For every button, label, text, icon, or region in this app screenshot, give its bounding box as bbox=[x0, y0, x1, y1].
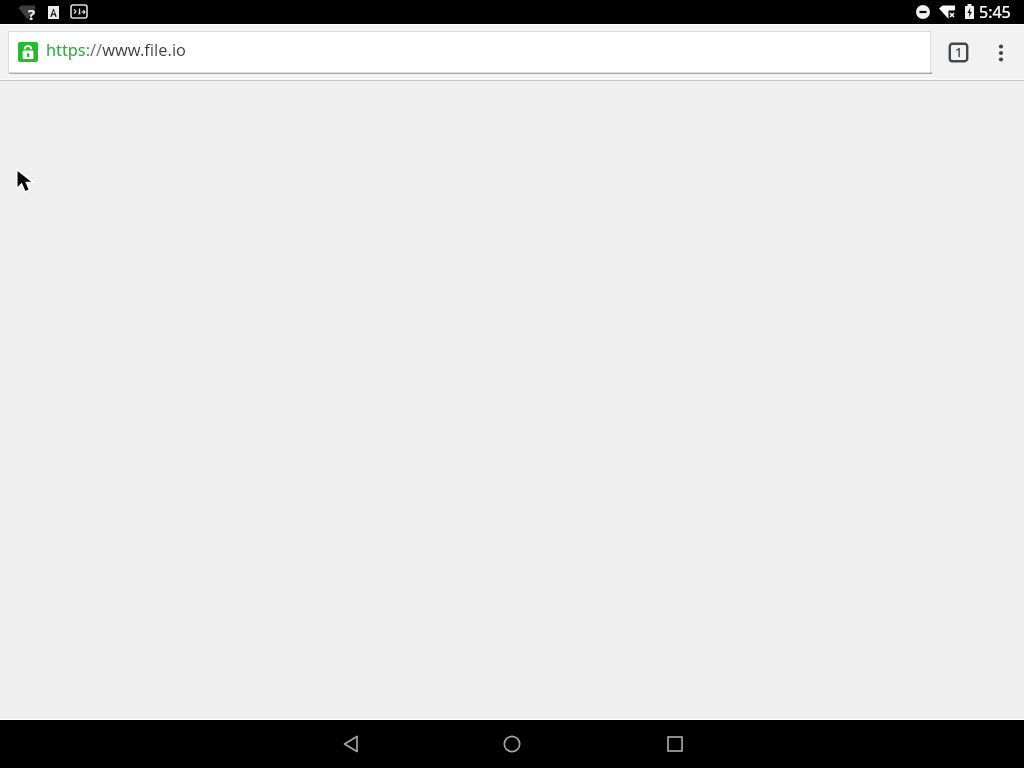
staticText: https://www.file.io bbox=[46, 39, 186, 61]
button[interactable]: Recents bbox=[651, 720, 699, 768]
button[interactable]: Home bbox=[488, 720, 536, 768]
staticText: ? bbox=[28, 4, 36, 24]
staticText: 1 bbox=[955, 44, 963, 61]
button[interactable]: Back bbox=[328, 720, 376, 768]
staticText: 5:45 bbox=[979, 1, 1011, 23]
button[interactable]: More options bbox=[983, 35, 1019, 71]
button[interactable]: https://www.file.io bbox=[8, 31, 931, 73]
button[interactable]: Tabs bbox=[940, 34, 976, 70]
